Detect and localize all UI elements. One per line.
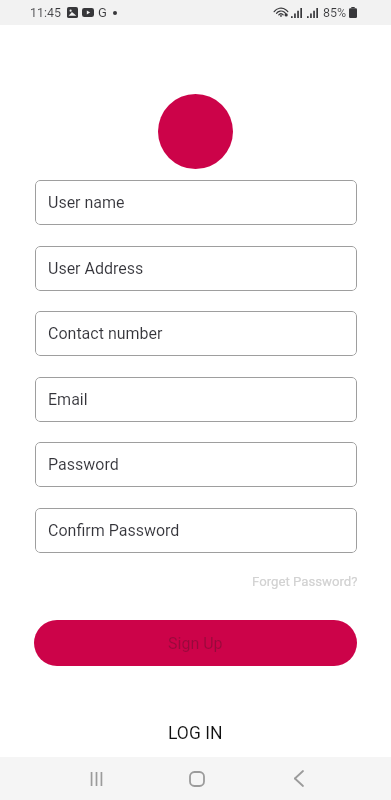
button[interactable]: Confirm Password	[35, 508, 357, 553]
staticText: 11:45	[30, 5, 62, 20]
button[interactable]: Back	[275, 757, 321, 800]
staticText: Sign Up	[168, 634, 223, 653]
button[interactable]: LOG IN	[168, 723, 223, 744]
button[interactable]: Email	[35, 377, 357, 422]
button[interactable]: Contact number	[35, 311, 357, 356]
staticText: 85%	[323, 5, 347, 20]
staticText: Contact number	[48, 324, 163, 343]
staticText: Email	[48, 390, 88, 409]
staticText: Password	[48, 455, 119, 474]
button[interactable]: App logo	[158, 94, 233, 169]
button[interactable]: Recent apps	[73, 757, 119, 800]
button[interactable]: Forget Password?	[252, 574, 358, 589]
button[interactable]: Sign Up	[34, 620, 357, 666]
button[interactable]: Password	[35, 442, 357, 487]
button[interactable]: User Address	[35, 246, 357, 291]
button[interactable]: Home	[174, 757, 220, 800]
staticText: G	[98, 5, 107, 20]
staticText: User name	[48, 193, 125, 212]
staticText: User Address	[48, 259, 144, 278]
staticText: Confirm Password	[48, 521, 180, 540]
button[interactable]: User name	[35, 180, 357, 225]
